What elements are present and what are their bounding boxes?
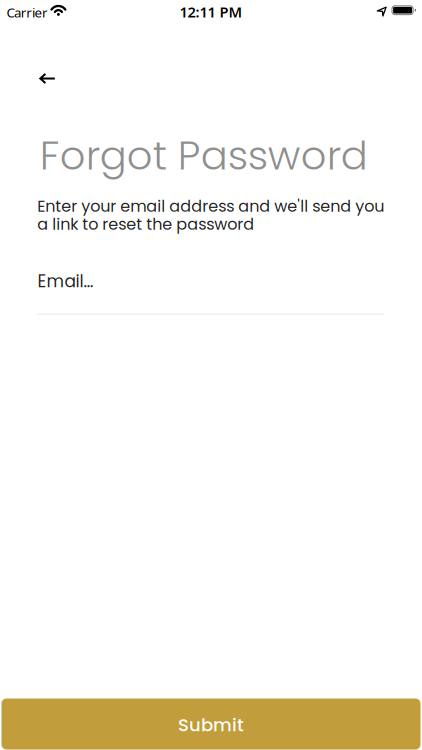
staticText: Forgot Password — [40, 127, 368, 183]
staticText: a link to reset the password — [37, 213, 254, 235]
staticText: Email… — [37, 269, 93, 293]
button[interactable]: Email — [37, 269, 384, 315]
button[interactable]: Back — [25, 56, 69, 100]
staticText: Enter your email address and we'll send … — [37, 195, 384, 217]
staticText: Submit — [178, 712, 244, 738]
button[interactable]: Submit — [1, 698, 420, 749]
staticText: 12:11 PM — [179, 2, 242, 21]
staticText: Carrier — [6, 3, 48, 21]
